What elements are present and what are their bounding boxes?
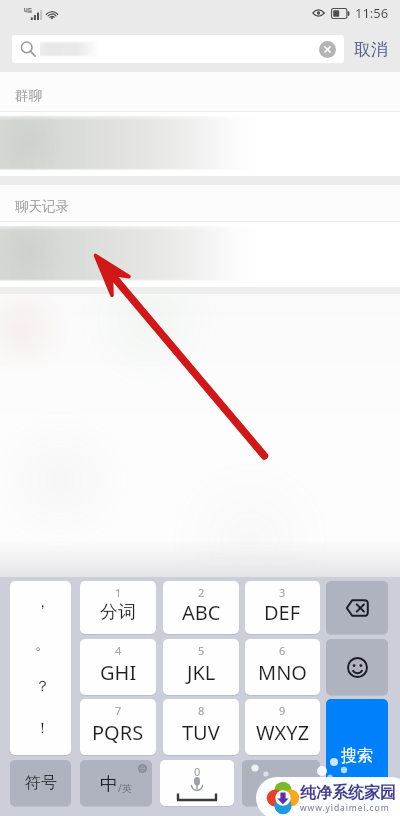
button[interactable]: 8: [163, 699, 239, 755]
button[interactable]: 3: [245, 581, 320, 634]
staticText: PQRS: [92, 719, 144, 746]
button[interactable]: Search field: [12, 35, 344, 63]
staticText: 6: [279, 643, 286, 658]
button[interactable]: Backspace: [326, 581, 388, 634]
staticText: 纯净系统家园: [300, 783, 396, 803]
button[interactable]: Emoji: [326, 639, 388, 695]
button[interactable]: 5: [163, 639, 239, 695]
staticText: 符号: [25, 773, 57, 793]
staticText: 搜索: [341, 746, 373, 766]
button[interactable]: 6: [245, 639, 320, 695]
button[interactable]: 中: [80, 760, 152, 806]
staticText: 7: [115, 703, 122, 718]
button[interactable]: 符号: [10, 760, 71, 806]
button[interactable]: 7: [80, 699, 156, 755]
button[interactable]: Clear text: [319, 41, 336, 58]
staticText: 8: [198, 703, 205, 718]
staticText: ？: [35, 677, 50, 696]
button[interactable]: Search result: [0, 222, 400, 287]
staticText: 群聊: [15, 87, 42, 104]
staticText: www.yidaimei.com: [300, 802, 390, 814]
button[interactable]: Punctuation: [10, 581, 71, 755]
staticText: TUV: [182, 719, 220, 746]
button[interactable]: 搜索: [326, 699, 388, 806]
staticText: 2: [198, 585, 205, 600]
button[interactable]: 2: [163, 581, 239, 634]
button[interactable]: Enter: [242, 760, 320, 806]
button[interactable]: 1: [80, 581, 156, 634]
staticText: 1: [115, 585, 122, 600]
staticText: ABC: [182, 599, 221, 626]
staticText: ，: [35, 593, 50, 612]
staticText: 聊天记录: [15, 198, 69, 215]
button[interactable]: Search result: [0, 112, 400, 176]
staticText: 。: [35, 635, 50, 654]
staticText: 11:56: [355, 4, 389, 22]
staticText: GHI: [100, 659, 137, 686]
staticText: ！: [35, 719, 50, 738]
staticText: 3: [279, 585, 286, 600]
button[interactable]: 取消: [354, 26, 388, 72]
staticText: 0: [194, 764, 201, 779]
staticText: 4: [115, 643, 122, 658]
staticText: 中: [100, 773, 118, 796]
button[interactable]: Space: [160, 760, 234, 806]
staticText: 9: [279, 703, 286, 718]
staticText: 分词: [100, 601, 136, 624]
staticText: WXYZ: [256, 719, 310, 746]
staticText: MNO: [258, 659, 307, 686]
staticText: JKL: [187, 659, 216, 686]
staticText: 5: [198, 643, 205, 658]
staticText: DEF: [264, 599, 301, 626]
button[interactable]: 4: [80, 639, 156, 695]
button[interactable]: 9: [245, 699, 320, 755]
staticText: 取消: [354, 39, 388, 60]
staticText: /英: [118, 781, 132, 795]
